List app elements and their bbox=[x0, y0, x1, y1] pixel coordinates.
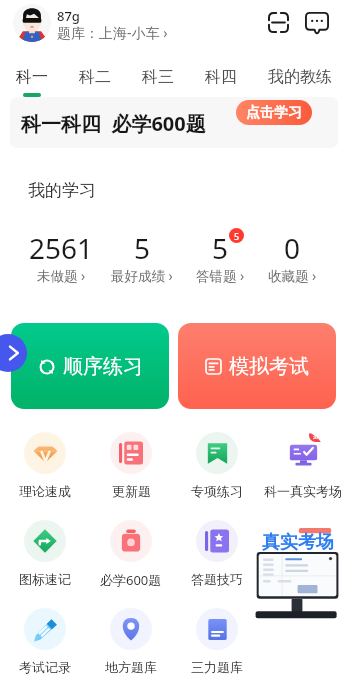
staticText: 收藏题 › bbox=[268, 267, 317, 285]
button[interactable]: 点击学习 bbox=[236, 100, 312, 125]
staticText: 科一 bbox=[16, 67, 48, 87]
staticText: 科四 bbox=[205, 67, 237, 87]
staticText: 图标速记 bbox=[19, 571, 71, 587]
staticText: 必考 bbox=[313, 432, 324, 440]
staticText: 地方题库 bbox=[105, 659, 157, 675]
button[interactable]: 2561 bbox=[16, 229, 106, 285]
button[interactable]: 答题技巧 bbox=[172, 520, 262, 587]
staticText: 科一真实考场 bbox=[264, 483, 342, 499]
staticText: 科三 bbox=[142, 67, 174, 87]
button[interactable]: 模拟考试 bbox=[178, 323, 336, 409]
button[interactable]: 图标速记 bbox=[0, 520, 90, 587]
staticText: 考试记录 bbox=[19, 659, 71, 675]
staticText: 5 bbox=[212, 229, 229, 267]
button[interactable]: Expand panel bbox=[0, 334, 27, 372]
staticText: 顺序练习 bbox=[63, 354, 143, 379]
staticText: 题库：上海-小车 › bbox=[57, 23, 168, 42]
button[interactable]: 科一 bbox=[16, 67, 48, 97]
button[interactable]: 科二 bbox=[79, 67, 111, 93]
button[interactable]: 顺序练习 bbox=[11, 323, 169, 409]
button[interactable]: 三力题库 bbox=[172, 608, 262, 675]
button[interactable]: 真实考场 bbox=[252, 528, 342, 623]
button[interactable]: Messages bbox=[304, 10, 330, 36]
button[interactable]: 必学600题 bbox=[86, 520, 176, 589]
button[interactable]: 科一科四 必学600题 bbox=[10, 97, 338, 148]
staticText: 87g bbox=[57, 7, 80, 25]
staticText: 我的学习 bbox=[28, 180, 96, 201]
staticText: 答错题 › bbox=[196, 267, 245, 285]
staticText: 必学600题 bbox=[100, 571, 162, 589]
button[interactable]: Scan bbox=[267, 11, 289, 33]
button[interactable]: 地方题库 bbox=[86, 608, 176, 675]
button[interactable]: 5 bbox=[97, 229, 187, 285]
button[interactable]: 科四 bbox=[205, 67, 237, 93]
staticText: 理论速成 bbox=[19, 483, 71, 499]
staticText: 专项练习 bbox=[191, 483, 243, 499]
button[interactable]: 必考 bbox=[258, 432, 348, 499]
staticText: 三力题库 bbox=[191, 659, 243, 675]
staticText: 模拟考试 bbox=[229, 354, 309, 379]
button[interactable]: 5 bbox=[175, 229, 265, 285]
staticText: 5 bbox=[134, 229, 151, 267]
staticText: 科二 bbox=[79, 67, 111, 87]
staticText: 更新题 bbox=[112, 483, 151, 499]
button[interactable]: 题库：上海-小车 › bbox=[57, 23, 168, 42]
staticText: 2561 bbox=[29, 229, 94, 267]
button[interactable]: 更新题 bbox=[86, 432, 176, 499]
staticText: 最好成绩 › bbox=[111, 267, 173, 285]
button[interactable]: 理论速成 bbox=[0, 432, 90, 499]
staticText: 0 bbox=[284, 229, 301, 267]
button[interactable]: 考试记录 bbox=[0, 608, 90, 675]
button[interactable]: 科三 bbox=[142, 67, 174, 93]
staticText: 科一科四 必学600题 bbox=[21, 110, 206, 137]
button[interactable]: 0 bbox=[247, 229, 337, 285]
staticText: 点击学习 bbox=[246, 104, 302, 122]
staticText: 未做题 › bbox=[37, 267, 86, 285]
staticText: 真实考场 bbox=[262, 531, 334, 554]
staticText: 我的教练 bbox=[268, 67, 332, 87]
staticText: 5 bbox=[234, 230, 240, 242]
staticText: 答题技巧 bbox=[191, 571, 243, 587]
button[interactable]: 专项练习 bbox=[172, 432, 262, 499]
button[interactable]: 我的教练 bbox=[268, 67, 332, 93]
button[interactable]: Profile bbox=[13, 4, 51, 42]
